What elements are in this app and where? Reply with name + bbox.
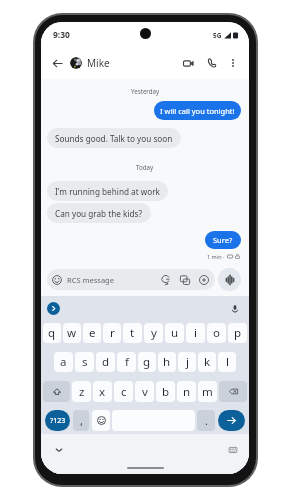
button[interactable]: Mike [87,56,110,70]
button[interactable]: Voice message [218,268,241,291]
staticText: x [99,384,106,400]
button[interactable]: . [197,410,215,431]
staticText: 5G [213,31,222,40]
staticText: p [234,325,242,341]
staticText: o [213,325,220,341]
staticText: j [186,354,189,370]
button[interactable]: Sure? [205,231,241,249]
staticText: I'm running behind at work [55,186,160,197]
button[interactable]: j [178,352,196,372]
button[interactable]: z [72,381,91,402]
staticText: Yesterday [131,87,160,95]
button[interactable]: Emoji [92,410,110,431]
button[interactable]: RCS message [47,269,215,290]
staticText: m [202,384,213,400]
button[interactable]: d [96,352,115,372]
button[interactable]: h [158,352,176,372]
staticText: . [205,413,208,428]
button[interactable]: i [186,323,205,343]
staticText: i [194,325,197,341]
button[interactable]: x [93,381,112,402]
button[interactable]: Sounds good. Talk to you soon [47,128,181,148]
button[interactable]: c [114,381,133,402]
button[interactable]: Expand toolbar [47,302,60,315]
staticText: ?123 [50,416,66,426]
button[interactable]: b [156,381,175,402]
staticText: Sounds good. Talk to you soon [55,133,173,144]
button[interactable]: Hide keyboard [52,443,65,456]
staticText: Sure? [213,235,233,245]
button[interactable]: Video call [179,54,197,72]
button[interactable]: g [138,352,156,372]
button[interactable]: Shift [43,381,70,402]
staticText: h [163,354,171,370]
button[interactable]: w [63,323,81,343]
staticText: r [110,325,115,341]
staticText: RCS message [67,275,114,285]
staticText: Today [136,163,154,171]
button[interactable]: More options [225,55,241,71]
button[interactable]: s [75,352,94,372]
button[interactable]: Voice input [228,302,241,315]
button[interactable]: I will call you tonight! [154,101,241,120]
button[interactable]: n [177,381,196,402]
staticText: g [143,354,151,370]
staticText: I will call you tonight! [160,106,235,116]
button[interactable]: m [198,381,217,402]
button[interactable]: q [43,323,61,343]
button[interactable]: o [207,323,226,343]
button[interactable]: k [198,352,216,372]
staticText: c [121,384,127,400]
staticText: , [80,413,83,428]
staticText: n [183,384,191,400]
staticText: 9:30 [53,29,70,41]
button[interactable]: Back [49,55,65,71]
staticText: b [162,384,170,400]
button[interactable]: y [144,323,163,343]
staticText: l [226,354,229,370]
staticText: v [142,384,148,400]
staticText: e [89,325,96,341]
button[interactable]: e [83,323,101,343]
button[interactable]: t [123,323,142,343]
staticText: d [102,354,110,370]
button[interactable]: ?123 [45,410,70,431]
button[interactable]: Send [218,410,245,431]
staticText: a [60,354,67,370]
button[interactable]: a [54,352,73,372]
button[interactable]: f [117,352,136,372]
button[interactable]: Switch keyboard [226,443,239,456]
button[interactable]: v [135,381,154,402]
button[interactable]: , [73,410,89,431]
staticText: y [151,325,157,341]
button[interactable]: Backspace [219,381,247,402]
button[interactable]: Call [203,54,221,72]
button[interactable]: I'm running behind at work [47,181,168,201]
button[interactable]: Can you grab the kids? [47,203,151,223]
staticText: f [125,354,129,370]
button[interactable]: Contact photo [70,57,82,69]
staticText: 1 min · [207,253,225,260]
button[interactable]: r [103,323,121,343]
staticText: w [67,325,77,341]
staticText: t [130,325,135,341]
staticText: Can you grab the kids? [55,208,143,219]
staticText: k [204,354,211,370]
button[interactable]: l [218,352,236,372]
staticText: z [79,384,85,400]
staticText: q [48,325,56,341]
staticText: u [171,325,179,341]
button[interactable]: p [228,323,247,343]
staticText: s [82,354,88,370]
button[interactable]: u [165,323,184,343]
